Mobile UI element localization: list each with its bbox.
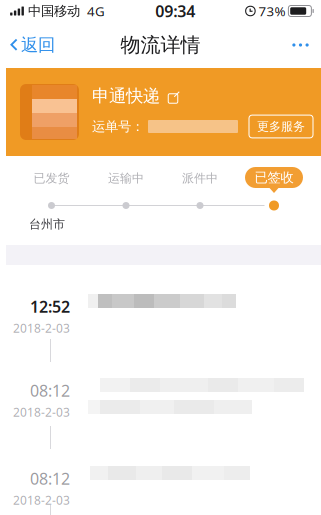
- staticText: 2018-2-03: [13, 492, 70, 508]
- staticText: 09:34: [155, 0, 195, 22]
- staticText: 返回: [21, 34, 55, 56]
- staticText: 更多服务: [257, 119, 305, 134]
- staticText: 申通快递: [92, 85, 160, 107]
- staticText: 4G: [87, 2, 105, 20]
- staticText: 运单号：: [92, 118, 144, 135]
- staticText: 已签收: [254, 169, 293, 186]
- staticText: 73%: [258, 2, 285, 20]
- staticText: 2018-2-03: [13, 404, 70, 420]
- button[interactable]: 返回: [0, 23, 67, 67]
- staticText: 12:52: [30, 296, 70, 317]
- staticText: 2018-2-03: [13, 320, 70, 336]
- staticText: 物流详情: [120, 33, 200, 57]
- staticText: 08:12: [30, 468, 70, 489]
- staticText: 台州市: [29, 217, 65, 232]
- staticText: 运输中: [108, 171, 144, 186]
- staticText: 派件中: [182, 171, 218, 186]
- staticText: 中国移动: [28, 3, 80, 19]
- button[interactable]: More options: [280, 23, 321, 67]
- staticText: 08:12: [30, 380, 70, 401]
- staticText: 已发货: [33, 171, 69, 186]
- button[interactable]: 更多服务: [249, 115, 313, 138]
